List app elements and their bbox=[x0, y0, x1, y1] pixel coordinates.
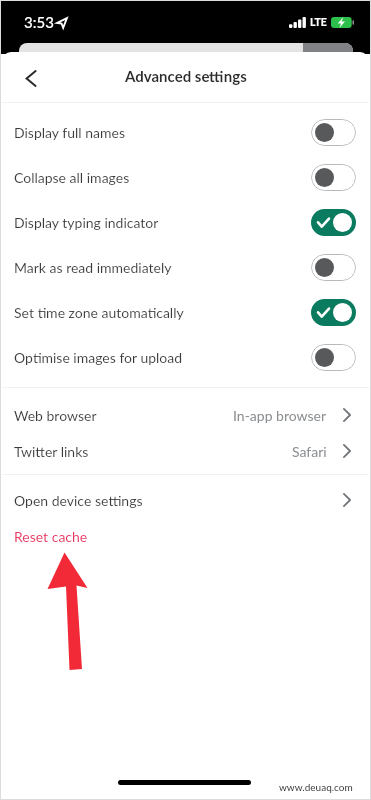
button[interactable]: Reset cache bbox=[2, 518, 369, 554]
button[interactable]: Optimise images for upload bbox=[2, 335, 369, 380]
button[interactable]: Collapse all images bbox=[2, 155, 369, 200]
button[interactable]: Display typing indicator bbox=[2, 200, 369, 245]
staticText: In-app browser bbox=[233, 407, 327, 424]
button[interactable]: Twitter links bbox=[2, 433, 369, 469]
staticText: www.deuaq.com bbox=[279, 781, 353, 793]
staticText: Reset cache bbox=[14, 528, 88, 545]
button[interactable]: Mark as read immediately bbox=[2, 245, 369, 290]
button[interactable]: Web browser bbox=[2, 397, 369, 433]
staticText: Web browser bbox=[14, 407, 97, 424]
staticText: Advanced settings bbox=[125, 67, 247, 85]
button[interactable]: Open device settings bbox=[2, 482, 369, 518]
staticText: 3:53 bbox=[24, 13, 54, 31]
staticText: Open device settings bbox=[14, 492, 143, 509]
staticText: Display typing indicator bbox=[14, 214, 159, 231]
staticText: LTE bbox=[310, 16, 327, 29]
staticText: Twitter links bbox=[14, 443, 89, 460]
staticText: Collapse all images bbox=[14, 169, 130, 186]
staticText: Display full names bbox=[14, 124, 125, 141]
staticText: Mark as read immediately bbox=[14, 259, 172, 276]
staticText: Optimise images for upload bbox=[14, 349, 183, 366]
staticText: Safari bbox=[292, 443, 327, 460]
button[interactable]: Back bbox=[14, 61, 48, 95]
button[interactable]: Set time zone automatically bbox=[2, 290, 369, 335]
button[interactable]: Display full names bbox=[2, 110, 369, 155]
staticText: Set time zone automatically bbox=[14, 304, 184, 321]
